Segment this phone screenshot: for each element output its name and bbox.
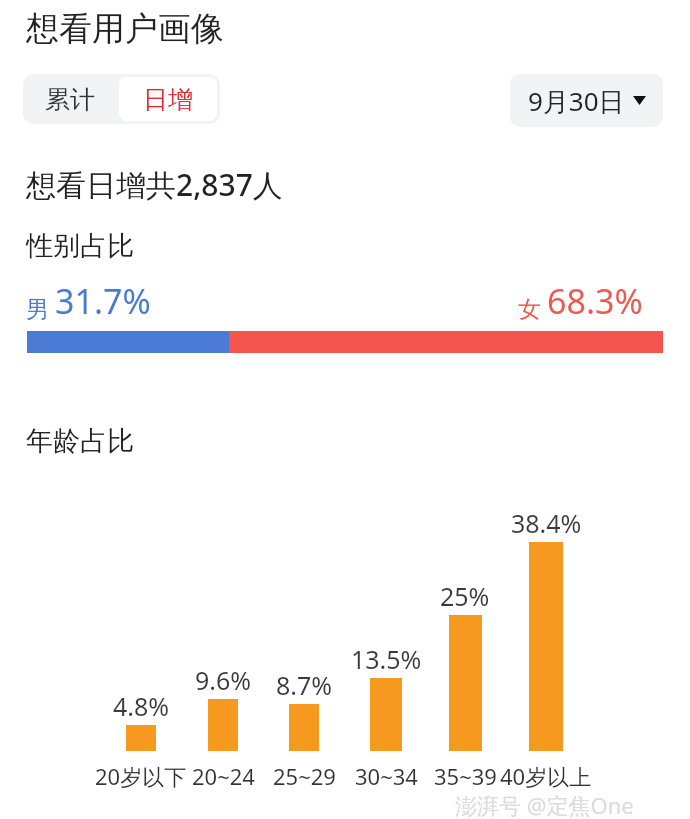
staticText: 8.7% [276,668,333,702]
button[interactable]: 9月30日 [510,74,663,127]
staticText: 40岁以上 [500,761,592,791]
other: Choose date [633,96,646,105]
staticText: 38.4% [511,506,582,540]
staticText: 30~34 [355,761,418,791]
staticText: 想看用户画像 [26,8,224,50]
staticText: 4.8% [113,689,170,723]
button[interactable]: 累计 [23,74,116,124]
staticText: 澎湃号 @定焦One [455,790,634,819]
staticText: 男 [26,295,49,324]
staticText: 想看日增共2,837人 [26,164,283,205]
staticText: 31.7% [55,278,151,324]
staticText: 年龄占比 [26,424,134,458]
staticText: 9月30日 [528,83,625,119]
staticText: 性别占比 [26,229,134,263]
staticText: 累计 [45,84,95,115]
staticText: 日增 [143,84,193,115]
staticText: 68.3% [547,278,643,324]
staticText: 9.6% [195,663,252,697]
staticText: 25% [440,579,490,613]
staticText: 25~29 [273,761,336,791]
staticText: 20岁以下 [95,761,187,791]
staticText: 35~39 [434,761,497,791]
staticText: 女 [518,295,541,324]
staticText: 20~24 [192,761,255,791]
button[interactable]: 日增 [119,77,217,121]
staticText: 13.5% [351,642,422,676]
